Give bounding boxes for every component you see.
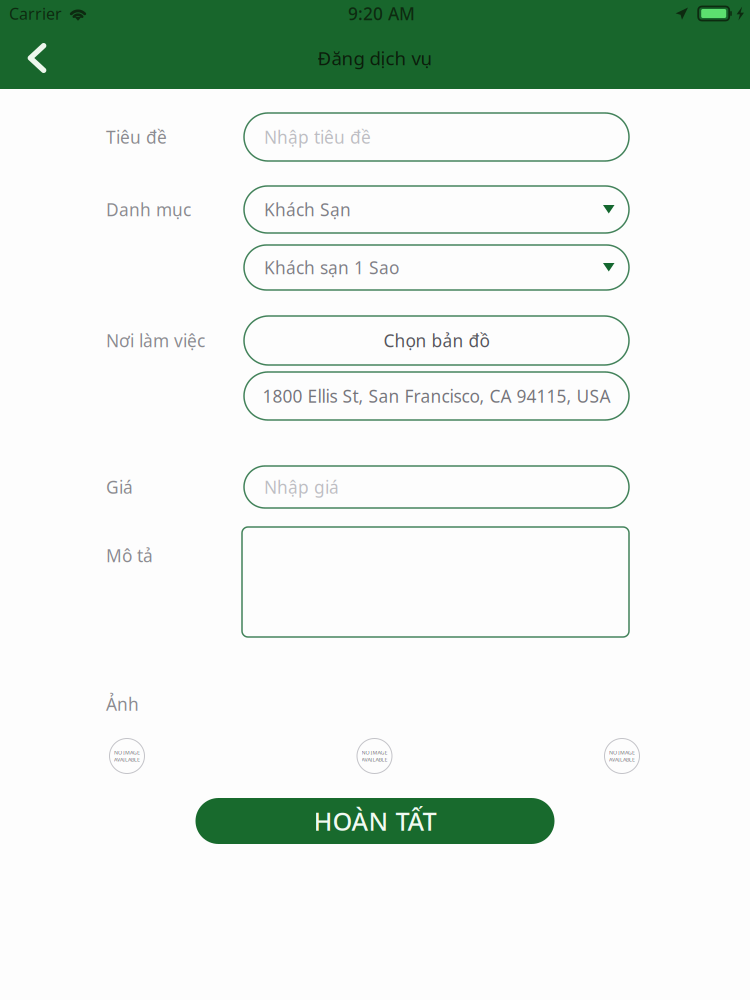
staticText: AVAILABLE — [609, 756, 635, 763]
staticText: 9:20 AM — [348, 2, 415, 25]
staticText: Mô tả — [106, 544, 153, 567]
button[interactable]: Nhập giá — [244, 466, 629, 508]
staticText: Nhập tiêu đề — [264, 125, 371, 148]
staticText: Đăng dịch vụ — [317, 46, 432, 70]
button[interactable]: Nhập tiêu đề — [244, 113, 629, 161]
button[interactable] — [242, 527, 629, 637]
staticText: Tiêu đề — [106, 125, 167, 148]
button[interactable]: Add photo — [353, 735, 395, 777]
staticText: Chọn bản đồ — [383, 329, 489, 352]
staticText: AVAILABLE — [361, 756, 387, 763]
button[interactable]: Chọn bản đồ — [244, 316, 629, 365]
staticText: 1800 Ellis St, San Francisco, CA 94115, … — [262, 384, 610, 407]
staticText: Khách Sạn — [264, 198, 351, 221]
staticText: NO IMAGE — [114, 749, 140, 756]
button[interactable]: Back — [0, 27, 62, 89]
staticText: NO IMAGE — [609, 749, 635, 756]
staticText: NO IMAGE — [361, 749, 387, 756]
button[interactable]: Khách Sạn — [244, 186, 629, 233]
staticText: Danh mục — [106, 198, 191, 221]
staticText: Khách sạn 1 Sao — [264, 256, 399, 279]
staticText: Carrier — [9, 3, 62, 24]
staticText: HOÀN TẤT — [313, 804, 436, 838]
button[interactable]: HOÀN TẤT — [195, 798, 554, 844]
button[interactable]: 1800 Ellis St, San Francisco, CA 94115, … — [244, 372, 629, 420]
staticText: Nhập giá — [264, 475, 339, 498]
staticText: Ảnh — [106, 692, 139, 715]
button[interactable]: Khách sạn 1 Sao — [244, 245, 629, 290]
staticText: AVAILABLE — [114, 756, 140, 763]
staticText: Giá — [106, 475, 133, 498]
button[interactable]: Add photo — [601, 735, 643, 777]
staticText: Nơi làm việc — [106, 329, 205, 352]
button[interactable]: Add photo — [106, 735, 148, 777]
